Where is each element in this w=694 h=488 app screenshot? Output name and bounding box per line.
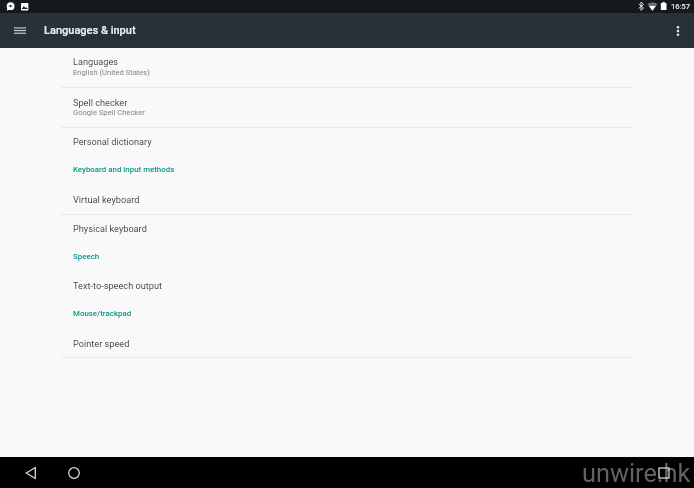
button[interactable]: Personal dictionary [0,127,694,156]
staticText: Keyboard and input methods [73,165,175,174]
staticText: Speech [73,252,100,261]
button[interactable]: Open navigation drawer [8,19,32,43]
button[interactable]: Back [19,461,43,485]
button[interactable]: Languages [0,48,694,87]
staticText: Languages & input [44,24,136,37]
staticText: Spell checker [73,97,128,108]
button[interactable]: Text-to-speech output [0,271,694,300]
button[interactable]: Spell checker [0,87,694,126]
staticText: Pointer speed [73,338,130,349]
staticText: 16:57 [671,2,690,11]
staticText: Mouse/trackpad [73,309,132,318]
button[interactable]: Pointer speed [0,329,694,358]
staticText: Google Spell Checker [73,108,145,117]
button[interactable]: Home [62,461,86,485]
staticText: Text-to-speech output [73,280,163,291]
staticText: Languages [73,56,119,67]
button[interactable]: Physical keyboard [0,214,694,243]
staticText: Virtual keyboard [73,194,140,205]
staticText: Physical keyboard [73,223,147,234]
button[interactable]: Virtual keyboard [0,185,694,214]
button[interactable]: More options [666,19,690,43]
button[interactable]: Recent apps [654,463,674,483]
staticText: Personal dictionary [73,136,152,147]
staticText: English (United States) [73,68,150,77]
staticText: unwire.hk [582,459,691,488]
